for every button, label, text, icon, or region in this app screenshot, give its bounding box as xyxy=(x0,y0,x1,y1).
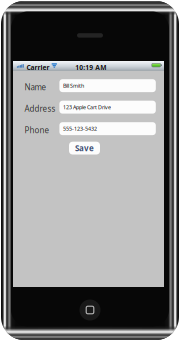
button[interactable]: Home xyxy=(79,299,100,320)
button[interactable]: 123 Apple Cart Drive xyxy=(59,101,156,114)
staticText: 123 Apple Cart Drive xyxy=(63,104,111,111)
button[interactable]: Save xyxy=(69,142,100,154)
staticText: Bill Smith xyxy=(63,82,84,89)
button[interactable]: Bill Smith xyxy=(59,79,156,92)
staticText: Phone xyxy=(24,125,49,135)
staticText: Save xyxy=(75,143,94,153)
staticText: Carrier xyxy=(27,63,50,72)
staticText: Name xyxy=(24,82,46,92)
staticText: 10:19 AM xyxy=(75,63,106,72)
staticText: Address xyxy=(24,103,55,114)
staticText: 555-123-5432 xyxy=(63,125,97,132)
button[interactable]: 555-123-5432 xyxy=(59,122,156,135)
